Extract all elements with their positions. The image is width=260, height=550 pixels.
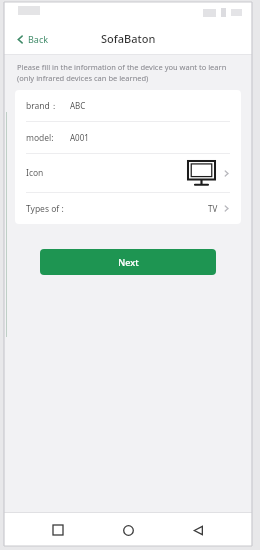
button[interactable]: Types of :	[15, 193, 241, 224]
staticText: Next	[118, 256, 139, 268]
button[interactable]: Recent apps	[42, 514, 74, 546]
button[interactable]: model:	[15, 122, 241, 153]
staticText: A001	[70, 132, 89, 143]
staticText: TV	[208, 203, 218, 214]
button[interactable]: Home	[112, 514, 144, 546]
staticText: Icon	[26, 167, 44, 179]
staticText: SofaBaton	[101, 31, 156, 46]
staticText: ABC	[70, 100, 86, 111]
other: TV icon	[188, 161, 215, 186]
button[interactable]: brand：	[15, 90, 241, 121]
button[interactable]: Next	[40, 249, 216, 275]
button[interactable]: Back	[182, 514, 214, 546]
staticText: brand：	[26, 100, 59, 112]
staticText: Back	[28, 33, 49, 45]
button[interactable]: Icon	[15, 154, 241, 192]
staticText: Please fill in the information of the de…	[17, 62, 242, 83]
button[interactable]: Back	[13, 29, 52, 49]
staticText: Types of :	[26, 203, 64, 215]
staticText: model:	[26, 132, 54, 144]
